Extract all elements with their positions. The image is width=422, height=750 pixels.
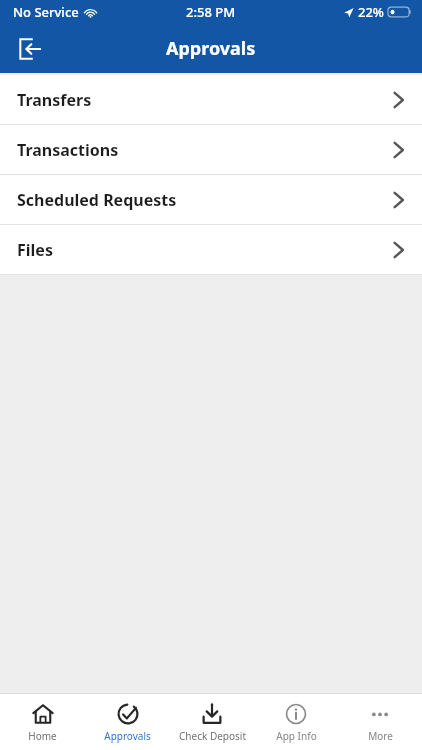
button[interactable]: Check Deposit [170, 697, 254, 748]
staticText: No Service [13, 3, 79, 21]
staticText: Transactions [17, 139, 119, 161]
button[interactable]: Home [0, 697, 85, 748]
staticText: Transfers [17, 89, 92, 111]
staticText: 22% [358, 3, 384, 21]
button[interactable]: Scheduled Requests [0, 175, 422, 224]
button[interactable]: App Info [254, 697, 338, 748]
button[interactable]: Files [0, 225, 422, 274]
staticText: Approvals [166, 36, 256, 61]
staticText: Check Deposit [179, 729, 246, 743]
staticText: Files [17, 239, 53, 261]
staticText: App Info [276, 729, 317, 743]
button[interactable]: More [338, 697, 422, 748]
staticText: Home [28, 729, 57, 743]
staticText: More [368, 729, 393, 743]
button[interactable]: Transactions [0, 125, 422, 174]
staticText: Scheduled Requests [17, 189, 177, 211]
staticText: 2:58 PM [186, 3, 236, 21]
button[interactable]: Log out [8, 27, 52, 71]
button[interactable]: Approvals [85, 697, 170, 748]
staticText: Approvals [104, 729, 151, 743]
button[interactable]: Transfers [0, 75, 422, 124]
